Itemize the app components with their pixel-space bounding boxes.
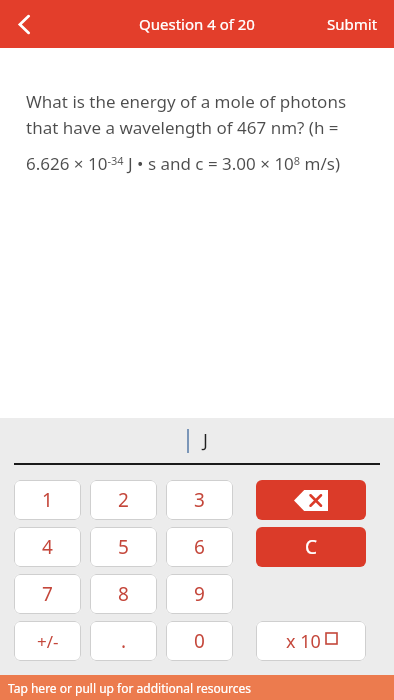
staticText: . xyxy=(121,628,127,654)
button[interactable]: 9 xyxy=(166,574,233,614)
button[interactable]: Backspace xyxy=(256,480,366,520)
button[interactable]: 3 xyxy=(166,480,233,520)
button[interactable]: 5 xyxy=(90,527,157,567)
button[interactable]: 6 xyxy=(166,527,233,567)
staticText: 1 xyxy=(42,487,53,513)
button[interactable]: 0 xyxy=(166,621,233,661)
button[interactable]: C xyxy=(256,527,366,567)
staticText: +/- xyxy=(37,630,59,653)
staticText: 5 xyxy=(118,534,129,560)
button[interactable]: Tap here or pull up for additional resou… xyxy=(0,675,394,700)
staticText: 3 xyxy=(194,487,205,513)
staticText: 8 xyxy=(118,581,129,607)
button[interactable]: +/- xyxy=(14,621,81,661)
staticText: C xyxy=(305,534,318,560)
staticText: What is the energy of a mole of photons … xyxy=(26,90,372,175)
staticText: x 10 xyxy=(286,629,321,654)
button[interactable]: Times ten to the power xyxy=(256,621,366,661)
staticText: Tap here or pull up for additional resou… xyxy=(8,680,252,696)
staticText: 4 xyxy=(42,534,53,560)
button[interactable]: . xyxy=(90,621,157,661)
staticText: J xyxy=(203,428,208,453)
staticText: Submit xyxy=(327,14,378,34)
staticText: 0 xyxy=(194,628,205,654)
staticText: 7 xyxy=(42,581,53,607)
button[interactable]: 2 xyxy=(90,480,157,520)
button[interactable]: 1 xyxy=(14,480,81,520)
button[interactable]: Back xyxy=(0,0,48,48)
button[interactable]: Submit xyxy=(311,0,394,48)
button[interactable]: 4 xyxy=(14,527,81,567)
staticText: 2 xyxy=(118,487,129,513)
staticText: Question 4 of 20 xyxy=(139,14,255,34)
staticText: 9 xyxy=(194,581,205,607)
staticText: 6 xyxy=(194,534,205,560)
button[interactable]: 8 xyxy=(90,574,157,614)
button[interactable]: 7 xyxy=(14,574,81,614)
